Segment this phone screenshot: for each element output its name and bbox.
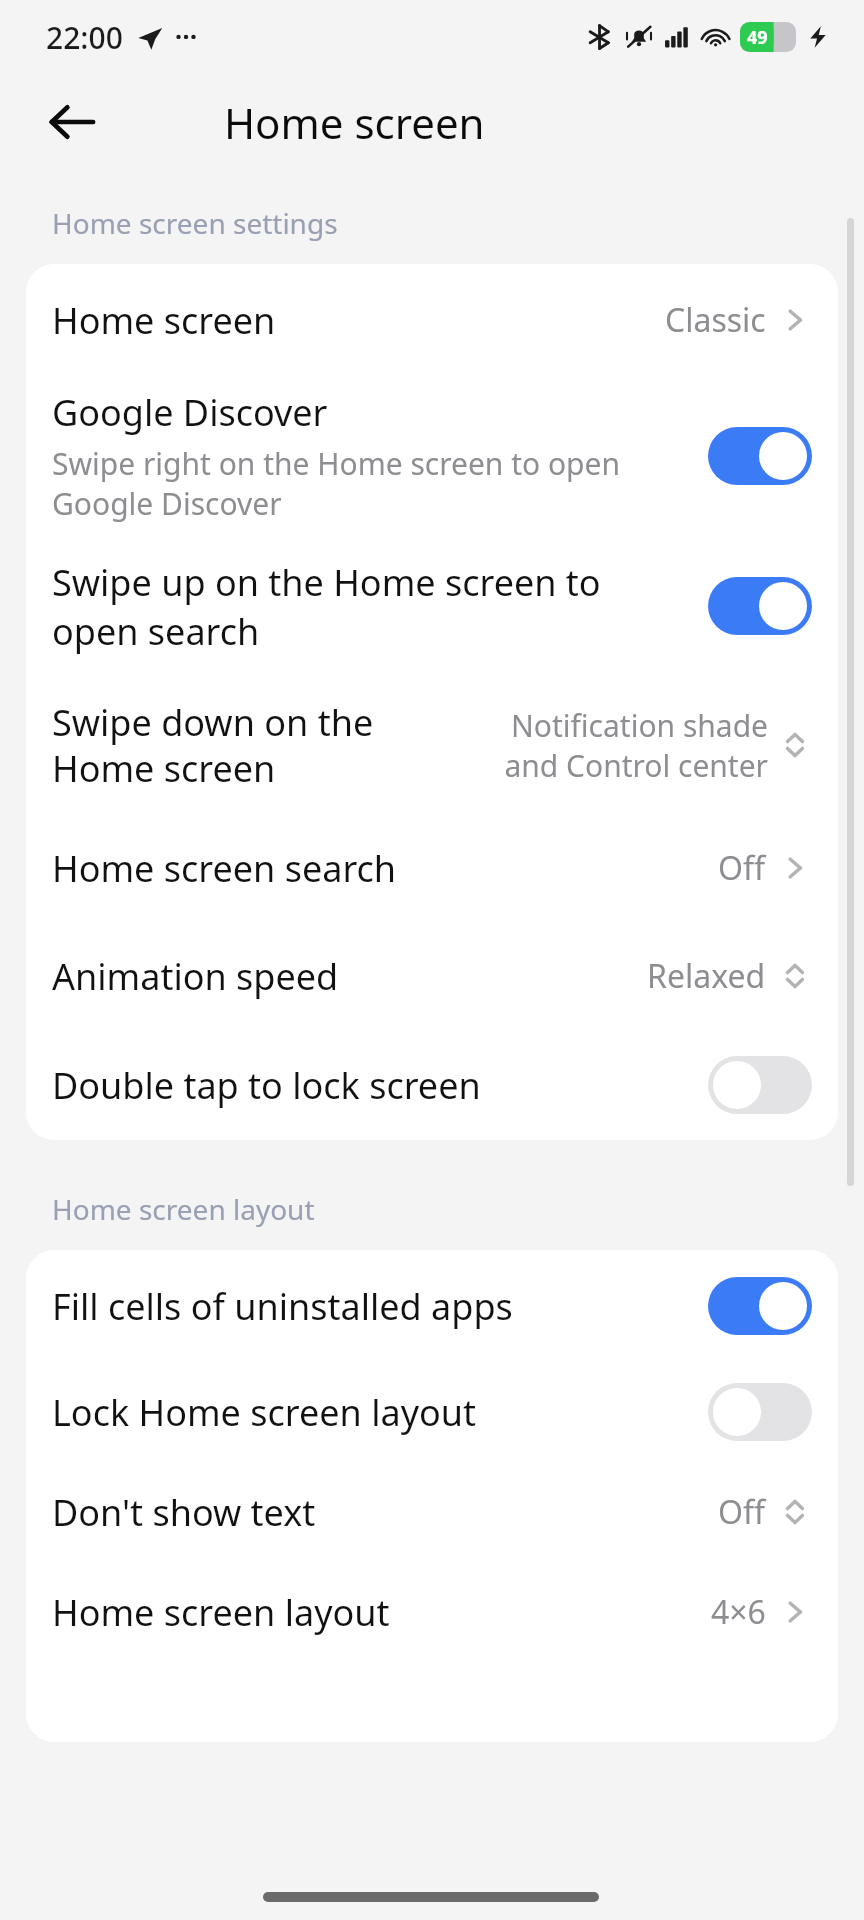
button[interactable]: Swipe down on the Home screen <box>26 676 838 814</box>
staticText: Notification shade and Control center <box>504 705 768 786</box>
staticText: Double tap to lock screen <box>52 1061 481 1110</box>
button[interactable]: Off <box>708 1056 812 1114</box>
button[interactable]: Home screen layout <box>26 1562 838 1662</box>
staticText: 22:00 <box>46 17 123 58</box>
staticText: Animation speed <box>52 952 647 1001</box>
staticText: Home screen <box>52 296 665 345</box>
staticText: Google Discover <box>52 388 328 437</box>
staticText: Lock Home screen layout <box>52 1388 477 1437</box>
button[interactable]: Fill cells of uninstalled apps <box>26 1250 838 1362</box>
button[interactable]: On <box>708 1277 812 1335</box>
staticText: 4×6 <box>711 1590 766 1634</box>
staticText: Swipe up on the Home screen to open sear… <box>52 558 601 655</box>
button[interactable]: Don't show text <box>26 1462 838 1562</box>
button[interactable]: Home screen search <box>26 814 838 922</box>
staticText: Relaxed <box>647 954 766 998</box>
button[interactable]: Google Discover <box>26 376 838 536</box>
staticText: Swipe right on the Home screen to open G… <box>52 443 621 524</box>
staticText: Home screen layout <box>52 1588 711 1637</box>
staticText: Swipe down on the Home screen <box>52 698 504 793</box>
button[interactable]: On <box>708 427 812 485</box>
button[interactable]: Animation speed <box>26 922 838 1030</box>
staticText: Off <box>718 846 766 890</box>
button[interactable]: Swipe up on the Home screen to open sear… <box>26 536 838 676</box>
button[interactable]: Lock Home screen layout <box>26 1362 838 1462</box>
staticText: Home screen layout <box>52 1190 315 1228</box>
staticText: Don't show text <box>52 1488 718 1537</box>
button[interactable]: Home screen <box>26 264 838 376</box>
staticText: Fill cells of uninstalled apps <box>52 1282 513 1331</box>
button[interactable]: Back <box>30 80 114 164</box>
staticText: Home screen settings <box>52 204 338 242</box>
staticText: Home screen <box>224 94 485 151</box>
button[interactable]: On <box>708 577 812 635</box>
button[interactable]: Double tap to lock screen <box>26 1030 838 1140</box>
staticText: Off <box>718 1490 766 1534</box>
staticText: 49 <box>747 25 768 50</box>
staticText: Home screen search <box>52 844 718 893</box>
staticText: Classic <box>665 298 766 342</box>
button[interactable]: Off <box>708 1383 812 1441</box>
